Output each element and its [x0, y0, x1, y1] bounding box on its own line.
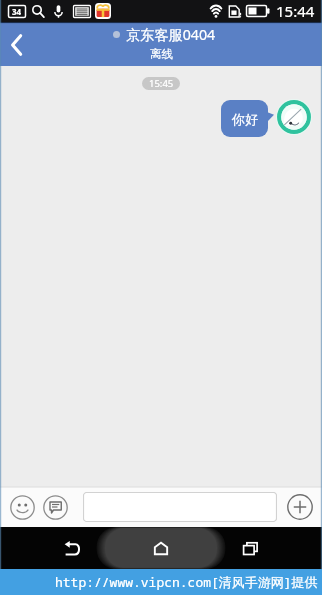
staticText: 离线 [150, 47, 173, 61]
button[interactable] [83, 492, 277, 522]
button[interactable]: Home [139, 527, 183, 569]
staticText: 15:44 [276, 1, 315, 21]
staticText: 你好 [232, 111, 258, 127]
staticText: 京东客服0404 [126, 25, 216, 44]
button[interactable]: Back [0, 22, 32, 66]
button[interactable]: Back [50, 527, 94, 569]
staticText: http://www.vipcn.com[清风手游网]提供 [55, 573, 318, 591]
button[interactable]: More [287, 494, 313, 520]
button[interactable]: Quick replies [42, 494, 68, 520]
button[interactable]: Recents [228, 527, 272, 569]
staticText: 15:45 [149, 77, 174, 90]
button[interactable]: 你好 [221, 100, 268, 137]
button[interactable]: Emoji [9, 494, 35, 520]
staticText: 34 [12, 6, 22, 17]
